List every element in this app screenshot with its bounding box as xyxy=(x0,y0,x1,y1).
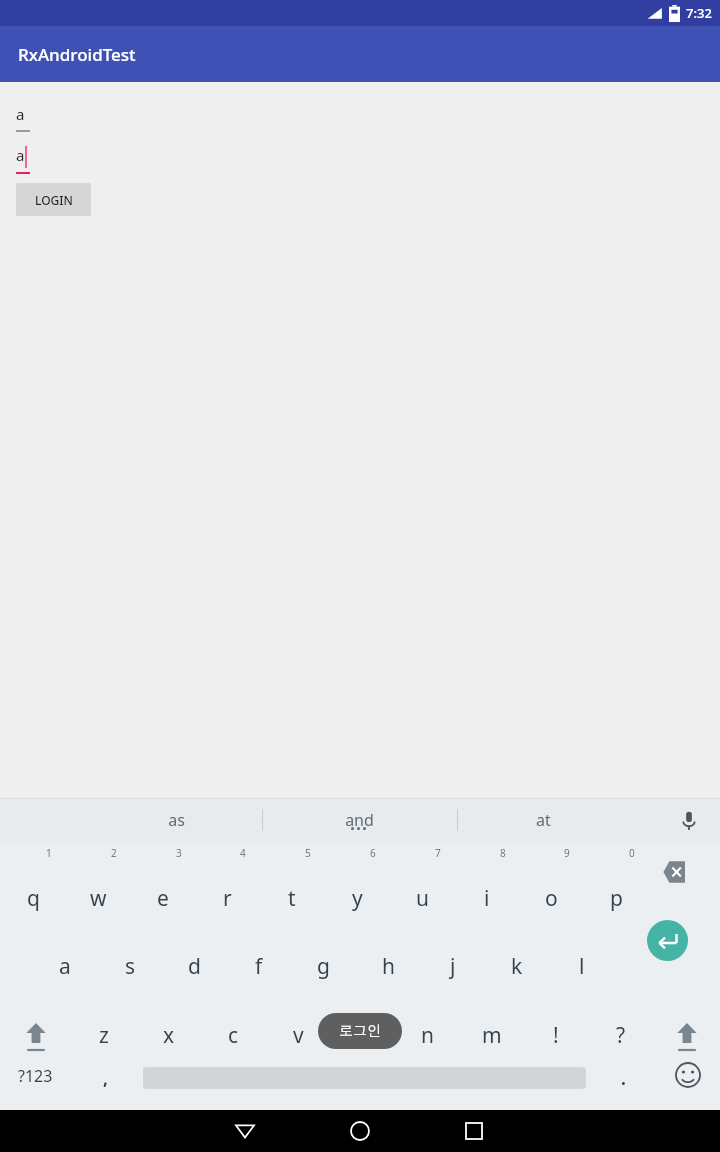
staticText: as xyxy=(168,809,185,831)
staticText: j xyxy=(450,952,456,981)
button[interactable]: d xyxy=(170,941,218,991)
button[interactable] xyxy=(351,827,369,830)
staticText: c xyxy=(228,1021,239,1050)
button[interactable]: o xyxy=(527,873,575,923)
staticText: p xyxy=(610,884,623,913)
staticText: s xyxy=(125,952,136,981)
button[interactable]: s xyxy=(106,941,154,991)
staticText: i xyxy=(484,884,490,913)
button[interactable]: v xyxy=(274,1010,322,1060)
staticText: m xyxy=(482,1021,502,1050)
staticText: 8 xyxy=(500,846,506,860)
button[interactable]: l xyxy=(558,941,606,991)
button[interactable]: Emoji xyxy=(673,1060,703,1090)
staticText: l xyxy=(579,952,585,981)
staticText: ! xyxy=(553,1021,559,1050)
staticText: n xyxy=(421,1021,434,1050)
button[interactable]: y xyxy=(333,873,381,923)
button[interactable]: a xyxy=(16,104,32,132)
staticText: a xyxy=(59,952,71,981)
button[interactable]: h xyxy=(364,941,412,991)
staticText: 로그인 xyxy=(339,1022,381,1040)
button[interactable]: g xyxy=(299,941,347,991)
button[interactable]: Backspace xyxy=(655,858,685,886)
staticText: o xyxy=(545,884,558,913)
button[interactable]: ?123 xyxy=(8,1056,63,1096)
button[interactable]: a xyxy=(41,941,89,991)
button[interactable]: n xyxy=(403,1010,451,1060)
button[interactable]: Recent apps xyxy=(454,1110,494,1152)
staticText: b xyxy=(356,1021,369,1050)
staticText: and xyxy=(345,809,374,831)
staticText: 2 xyxy=(111,846,117,860)
button[interactable]: ! xyxy=(532,1010,580,1060)
button[interactable]: c xyxy=(209,1010,257,1060)
staticText: w xyxy=(90,884,107,913)
staticText: g xyxy=(317,952,330,981)
button[interactable]: e xyxy=(139,873,187,923)
button[interactable]: Home xyxy=(340,1110,380,1152)
button[interactable]: LOGIN xyxy=(16,183,91,216)
button[interactable]: Voice input xyxy=(676,807,702,833)
button[interactable]: u xyxy=(398,873,446,923)
button[interactable]: Back xyxy=(225,1110,265,1152)
button[interactable]: r xyxy=(203,873,251,923)
staticText: RxAndroidTest xyxy=(18,43,136,66)
staticText: v xyxy=(293,1021,304,1050)
staticText: d xyxy=(188,952,201,981)
staticText: , xyxy=(103,1067,108,1090)
staticText: 6 xyxy=(370,846,376,860)
button[interactable]: b xyxy=(338,1010,386,1060)
staticText: h xyxy=(382,952,395,981)
staticText: at xyxy=(536,809,551,831)
button[interactable]: t xyxy=(268,873,316,923)
staticText: f xyxy=(255,952,263,981)
button[interactable]: k xyxy=(493,941,541,991)
staticText: e xyxy=(157,884,169,913)
button[interactable]: q xyxy=(9,873,57,923)
button[interactable]: , xyxy=(88,1060,122,1096)
button[interactable]: Enter xyxy=(647,920,688,961)
staticText: q xyxy=(27,884,40,913)
staticText: t xyxy=(288,884,296,913)
staticText: a xyxy=(16,104,25,124)
staticText: 9 xyxy=(564,846,570,860)
staticText: ?123 xyxy=(18,1065,53,1087)
staticText: r xyxy=(223,884,232,913)
staticText: x xyxy=(163,1021,175,1050)
staticText: a xyxy=(16,145,25,165)
button[interactable]: Shift xyxy=(665,1010,709,1060)
button[interactable]: i xyxy=(463,873,511,923)
button[interactable]: j xyxy=(429,941,477,991)
staticText: u xyxy=(416,884,429,913)
button[interactable]: f xyxy=(235,941,283,991)
button[interactable]: as xyxy=(131,798,221,841)
staticText: k xyxy=(511,952,523,981)
staticText: ? xyxy=(616,1021,626,1050)
button[interactable]: at xyxy=(498,798,588,841)
button[interactable]: a xyxy=(16,145,34,174)
staticText: 3 xyxy=(176,846,182,860)
staticText: y xyxy=(352,884,363,913)
button[interactable]: . xyxy=(608,1060,638,1096)
button[interactable]: w xyxy=(74,873,122,923)
button[interactable]: ? xyxy=(597,1010,645,1060)
button[interactable]: and xyxy=(314,798,404,841)
staticText: LOGIN xyxy=(35,192,73,208)
button[interactable]: x xyxy=(145,1010,193,1060)
staticText: 5 xyxy=(305,846,311,860)
staticText: 0 xyxy=(629,846,635,860)
staticText: . xyxy=(621,1067,626,1090)
staticText: z xyxy=(99,1021,109,1050)
staticText: 1 xyxy=(46,846,52,860)
button[interactable]: m xyxy=(468,1010,516,1060)
staticText: 7:32 xyxy=(686,4,712,22)
staticText: 4 xyxy=(240,846,246,860)
button[interactable]: Shift xyxy=(14,1010,58,1060)
button[interactable]: p xyxy=(592,873,640,923)
staticText: 7 xyxy=(435,846,441,860)
button[interactable]: z xyxy=(80,1010,128,1060)
